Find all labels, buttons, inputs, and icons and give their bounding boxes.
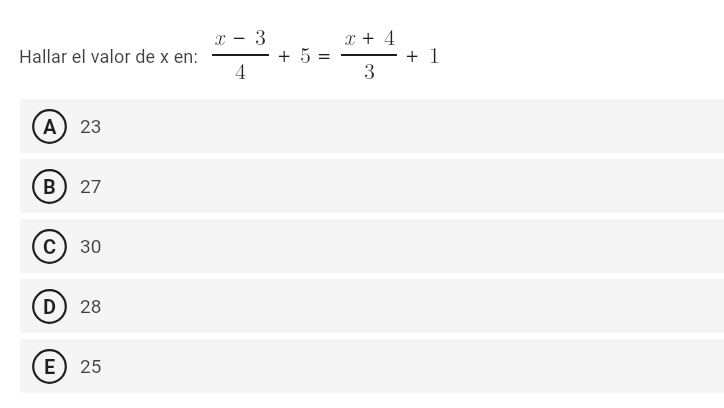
staticText: + (362, 21, 375, 50)
button[interactable]: C (20, 219, 724, 273)
staticText: 28 (80, 295, 102, 317)
staticText: − (233, 21, 246, 50)
staticText: x (214, 20, 225, 51)
staticText: A (43, 115, 57, 138)
staticText: 4 (235, 54, 247, 85)
staticText: 3 (364, 54, 376, 85)
button[interactable]: B (20, 159, 724, 213)
button[interactable]: A (20, 99, 724, 153)
staticText: 1 (429, 38, 441, 69)
staticText: 4 (384, 20, 396, 51)
staticText: E (44, 355, 56, 378)
staticText: + (406, 39, 419, 68)
staticText: 27 (80, 175, 102, 197)
staticText: 5 (300, 38, 312, 69)
button[interactable]: E (20, 339, 724, 393)
staticText: Hallar el valor de x en: (19, 46, 198, 67)
staticText: + (278, 39, 291, 68)
staticText: 30 (80, 235, 102, 257)
staticText: 3 (255, 20, 267, 51)
staticText: = (318, 39, 331, 68)
staticText: 23 (80, 115, 102, 137)
button[interactable]: D (20, 279, 724, 333)
staticText: D (43, 295, 57, 318)
staticText: 25 (80, 355, 102, 377)
staticText: x (344, 20, 355, 51)
staticText: B (43, 175, 56, 198)
staticText: C (43, 235, 57, 258)
